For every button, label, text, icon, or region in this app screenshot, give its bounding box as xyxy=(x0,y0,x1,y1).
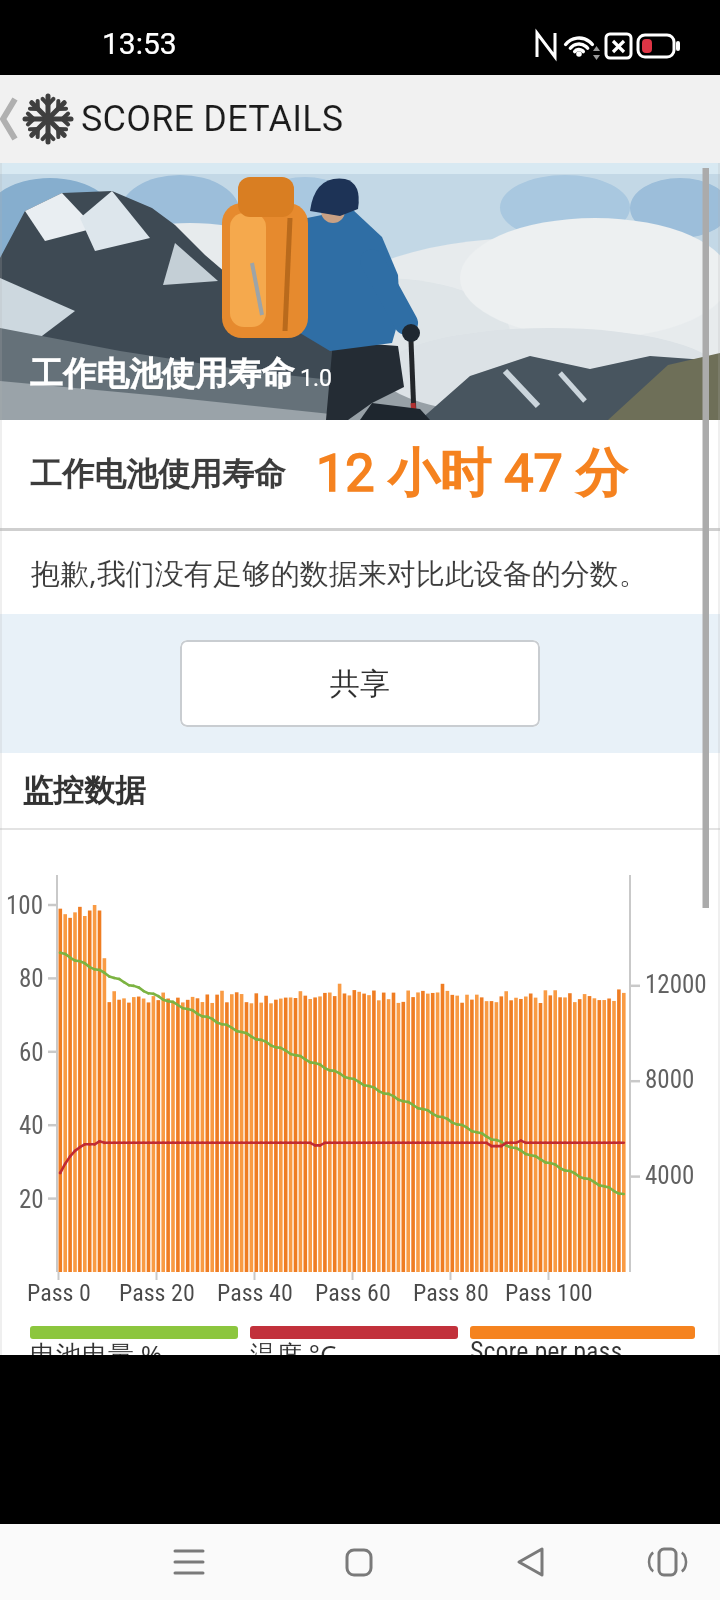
button[interactable] xyxy=(149,1524,229,1600)
staticText: Pass 80 xyxy=(413,1279,489,1307)
staticText: Pass 40 xyxy=(217,1279,293,1307)
staticText: 12 小时 47 分 xyxy=(316,441,628,507)
staticText: Pass 0 xyxy=(27,1279,91,1307)
staticText: 100 xyxy=(6,891,44,920)
staticText: 电池电量 % xyxy=(30,1336,163,1355)
staticText: Pass 60 xyxy=(315,1279,391,1307)
staticText: 60 xyxy=(19,1038,44,1067)
button[interactable] xyxy=(319,1524,399,1600)
staticText: 4000 xyxy=(645,1161,695,1190)
staticText: Score per pass xyxy=(470,1336,623,1355)
staticText: 工作电池使用寿命 xyxy=(30,353,294,395)
button[interactable] xyxy=(627,1524,707,1600)
button[interactable]: 共享 xyxy=(180,640,540,727)
staticText: Pass 20 xyxy=(119,1279,195,1307)
button[interactable]: SCORE DETAILS xyxy=(0,75,339,163)
staticText: 监控数据 xyxy=(22,771,146,810)
staticText: 8000 xyxy=(645,1065,695,1094)
staticText: 共享 xyxy=(330,665,390,703)
staticText: 20 xyxy=(19,1185,44,1214)
staticText: 温度 °C xyxy=(250,1336,337,1355)
staticText: Pass 100 xyxy=(505,1279,593,1307)
staticText: 12000 xyxy=(645,970,707,999)
staticText: 抱歉,我们没有足够的数据来对比此设备的分数。 xyxy=(31,553,648,593)
staticText: 1.0 xyxy=(300,365,332,392)
staticText: SCORE DETAILS xyxy=(81,98,344,140)
staticText: 工作电池使用寿命 xyxy=(30,454,286,494)
button[interactable] xyxy=(490,1524,570,1600)
staticText: 13:53 xyxy=(102,26,177,61)
staticText: 40 xyxy=(19,1111,44,1140)
staticText: 80 xyxy=(19,964,44,993)
